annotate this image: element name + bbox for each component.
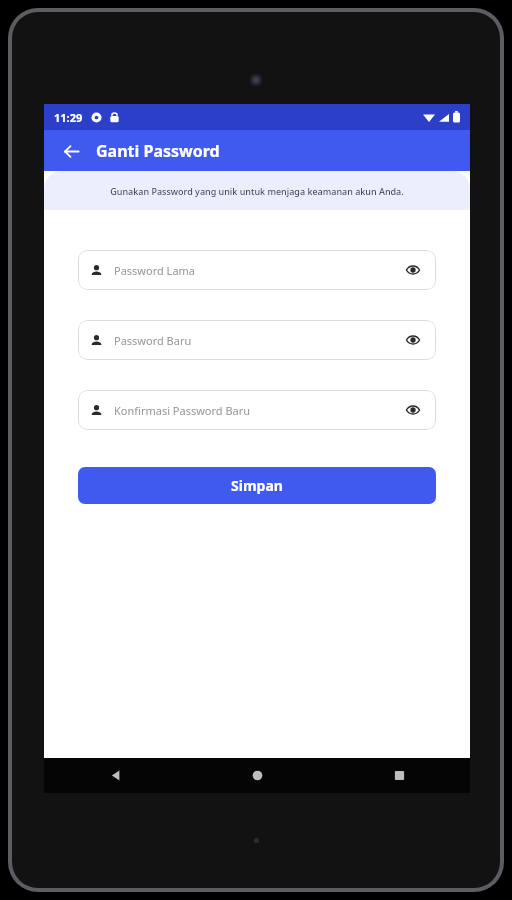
button[interactable]: Home [186,758,328,793]
button[interactable]: Konfirmasi Password Baru [78,390,436,430]
staticText: Simpan [231,476,283,495]
button[interactable]: Simpan [78,467,436,504]
staticText: Ganti Password [96,140,220,162]
staticText: Gunakan Password yang unik untuk menjaga… [110,185,404,197]
button[interactable]: Toggle password visibility [402,329,424,351]
button[interactable]: Recent apps [328,758,470,793]
staticText: Password Lama [114,263,402,278]
button[interactable]: Password Baru [78,320,436,360]
button[interactable]: Back [56,136,86,166]
staticText: Password Baru [114,333,402,348]
button[interactable]: Toggle password visibility [402,259,424,281]
button[interactable]: Toggle password visibility [402,399,424,421]
button[interactable]: Back [44,758,186,793]
button[interactable]: Password Lama [78,250,436,290]
staticText: 11:29 [54,110,83,125]
staticText: Konfirmasi Password Baru [114,403,402,418]
